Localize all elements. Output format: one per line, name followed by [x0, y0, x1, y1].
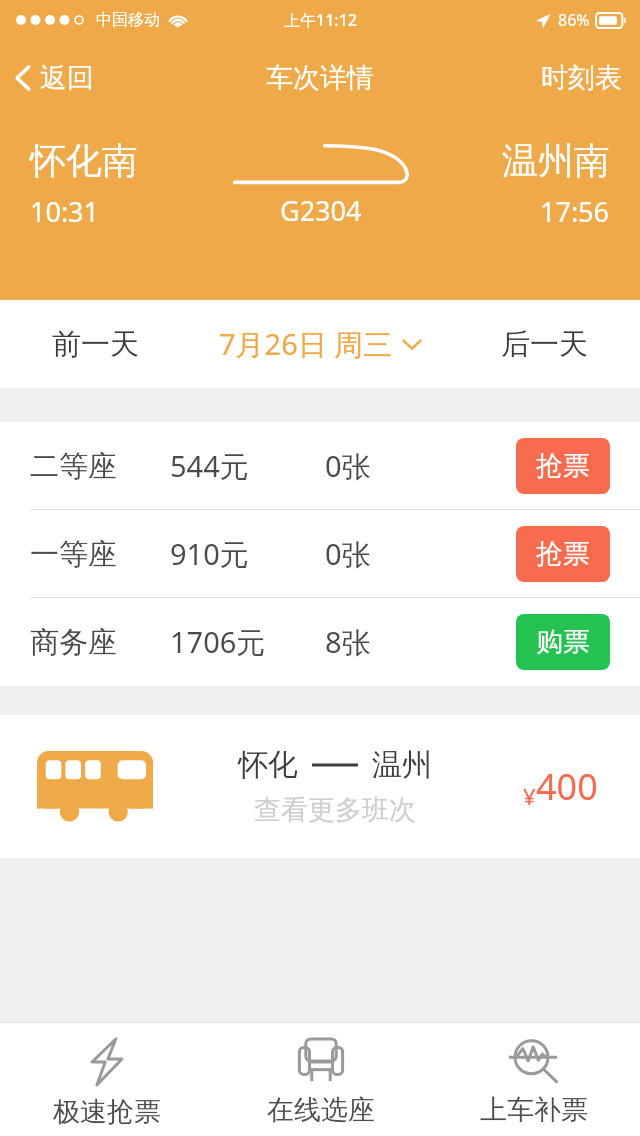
staticText: 86%	[558, 9, 590, 31]
button[interactable]: 7月26日 周三	[191, 300, 449, 388]
staticText: 商务座	[30, 624, 170, 661]
button[interactable]: 怀化	[0, 715, 640, 858]
staticText: 车次详情	[266, 61, 374, 95]
other: 上车补票	[509, 1037, 559, 1085]
staticText: 前一天	[52, 326, 139, 363]
staticText: 0张	[325, 534, 516, 574]
staticText: 后一天	[501, 326, 588, 363]
staticText: 抢票	[536, 449, 590, 483]
staticText: 温州南	[502, 138, 610, 183]
staticText: 极速抢票	[53, 1095, 161, 1129]
staticText: 上车补票	[480, 1093, 588, 1127]
staticText: 8张	[325, 622, 516, 662]
staticText: 怀化	[238, 746, 298, 784]
button[interactable]: 抢票	[516, 526, 610, 582]
staticText: 温州	[372, 746, 432, 784]
staticText: 中国移动	[96, 10, 160, 30]
staticText: ¥	[523, 781, 536, 811]
button[interactable]: 后一天	[449, 300, 640, 388]
staticText: 查看更多班次	[254, 793, 416, 827]
button[interactable]: 极速抢票	[0, 1023, 214, 1136]
staticText: 1706元	[170, 622, 325, 662]
staticText: 910元	[170, 534, 325, 574]
staticText: 怀化南	[30, 138, 138, 183]
staticText: 上午11:12	[284, 9, 357, 31]
staticText: 一等座	[30, 536, 170, 573]
button[interactable]: 抢票	[516, 438, 610, 494]
staticText: 10:31	[30, 193, 100, 230]
other: 极速抢票	[85, 1037, 129, 1087]
staticText: 时刻表	[541, 61, 622, 95]
staticText: 7月26日 周三	[219, 324, 393, 364]
button[interactable]: 返回	[0, 53, 110, 103]
button[interactable]: 在线选座	[214, 1023, 427, 1136]
other: 在线选座	[298, 1037, 344, 1085]
staticText: 0张	[325, 446, 516, 486]
staticText: 544元	[170, 446, 325, 486]
staticText: 二等座	[30, 448, 170, 485]
staticText: G2304	[280, 192, 362, 229]
button[interactable]: 上车补票	[427, 1023, 640, 1136]
staticText: 17:56	[540, 193, 610, 230]
staticText: 在线选座	[267, 1093, 375, 1127]
staticText: 购票	[536, 625, 590, 659]
button[interactable]: 前一天	[0, 300, 191, 388]
staticText: 抢票	[536, 537, 590, 571]
staticText: 400	[536, 762, 598, 811]
staticText: 返回	[40, 61, 94, 95]
button[interactable]: 时刻表	[523, 53, 640, 103]
button[interactable]: 购票	[516, 614, 610, 670]
